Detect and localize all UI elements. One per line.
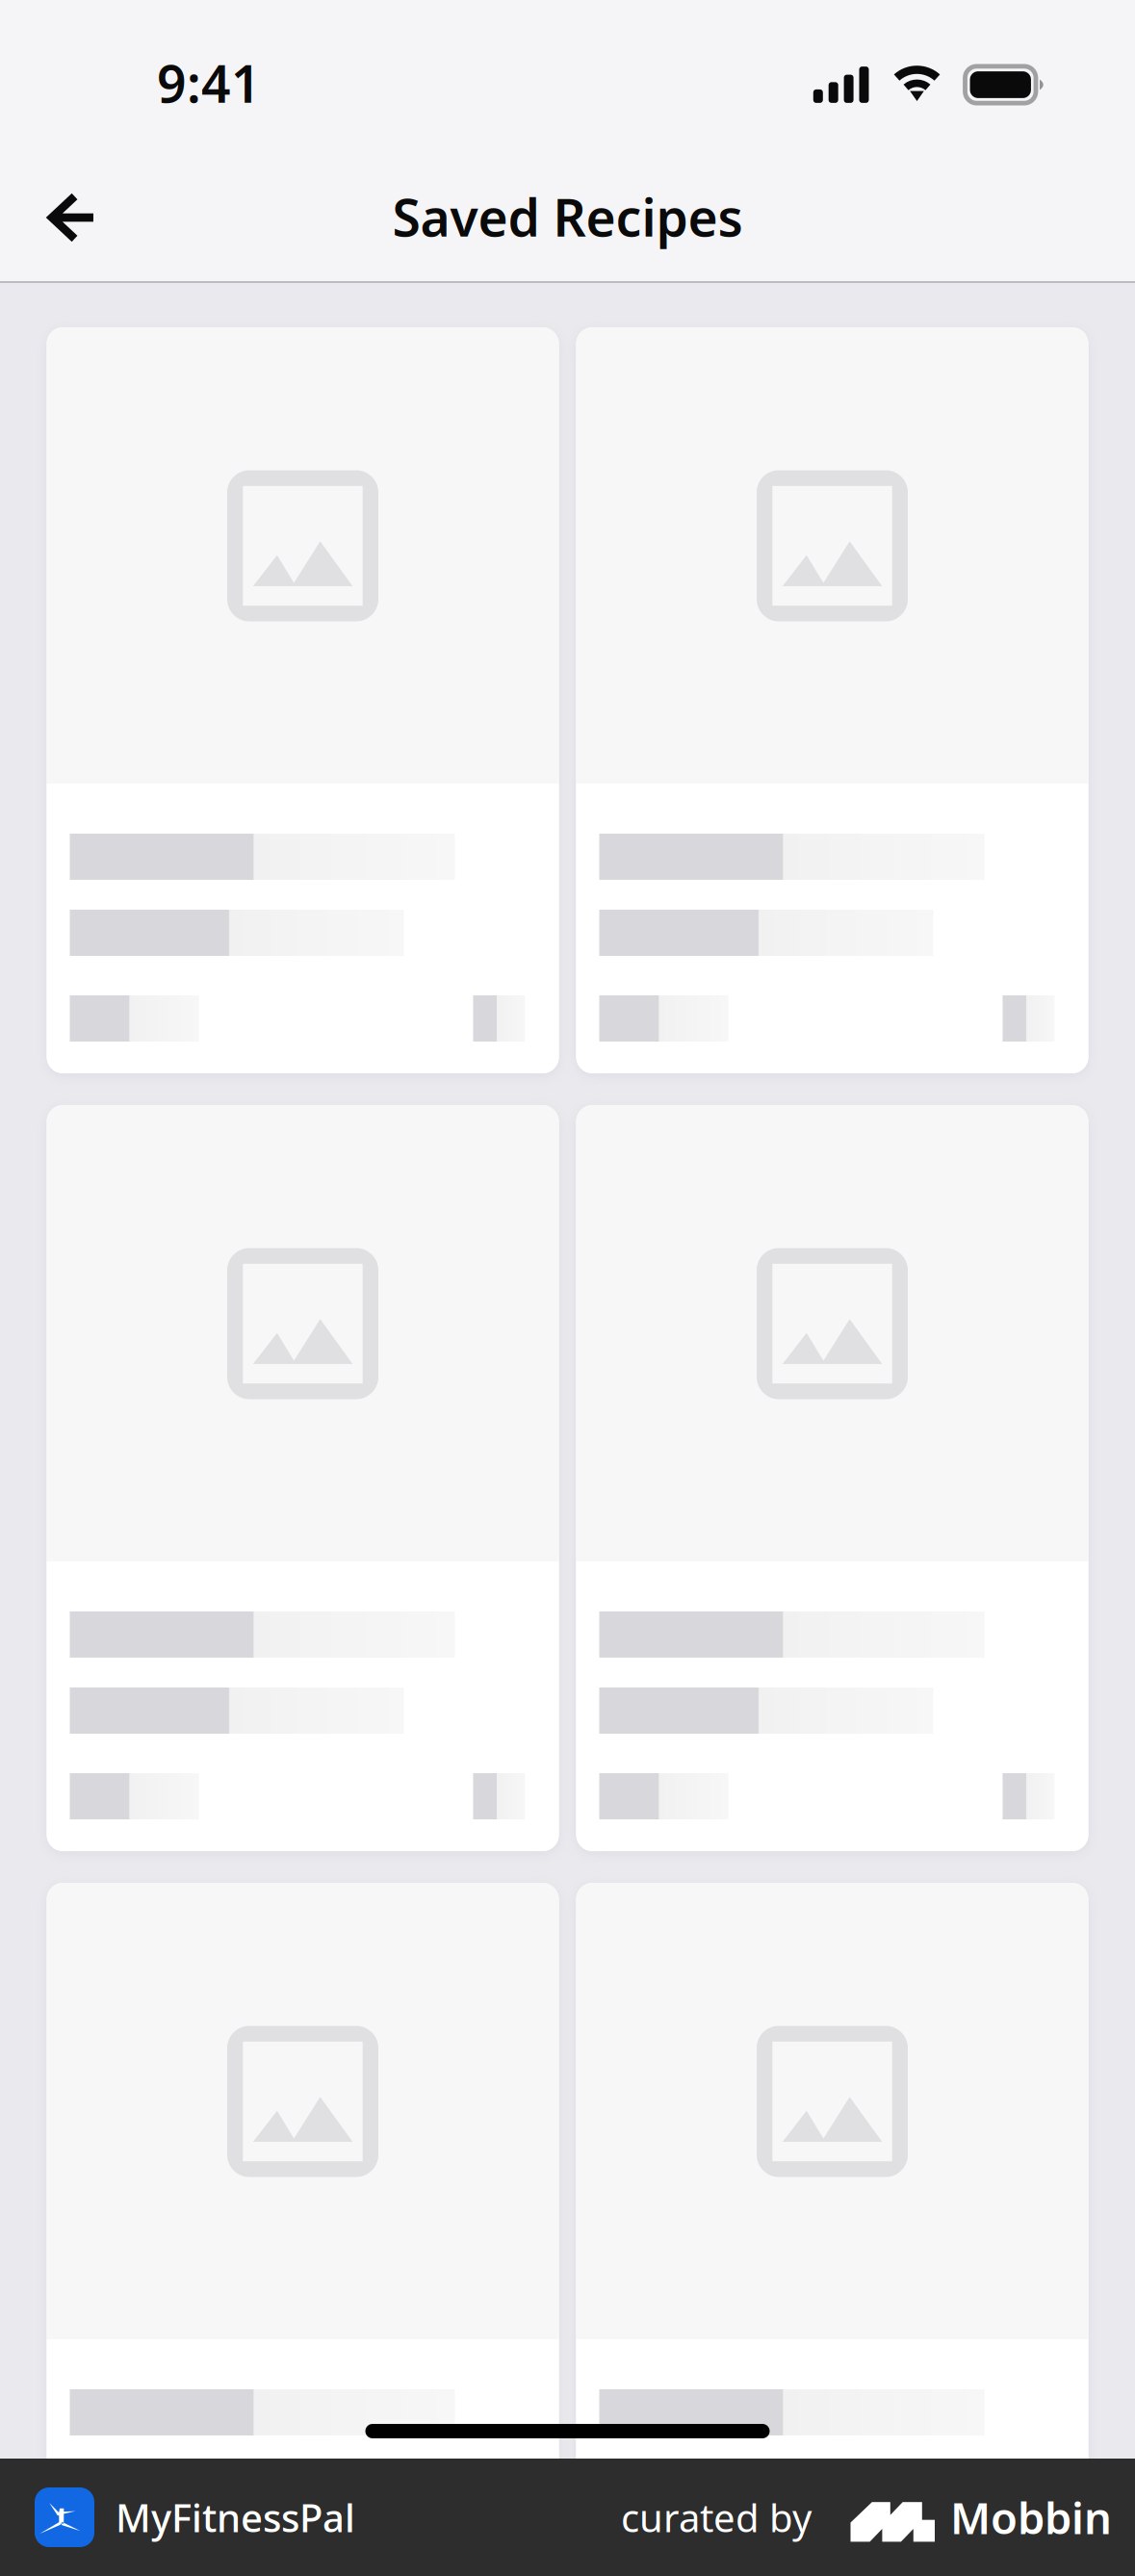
staticText: curated by bbox=[621, 2492, 812, 2543]
button[interactable]: Back bbox=[27, 180, 119, 269]
staticText: Mobbin bbox=[950, 2488, 1112, 2546]
staticText: MyFitnessPal bbox=[116, 2492, 355, 2543]
staticText: Saved Recipes bbox=[392, 183, 743, 251]
button[interactable]: Recipe bbox=[47, 1105, 559, 1851]
staticText: 9:41 bbox=[157, 49, 261, 117]
button[interactable]: Recipe bbox=[47, 1883, 559, 2576]
button[interactable]: Recipe bbox=[47, 327, 559, 1073]
button[interactable]: Recipe bbox=[576, 327, 1088, 1073]
button[interactable]: Recipe bbox=[576, 1883, 1088, 2576]
button[interactable]: Recipe bbox=[576, 1105, 1088, 1851]
